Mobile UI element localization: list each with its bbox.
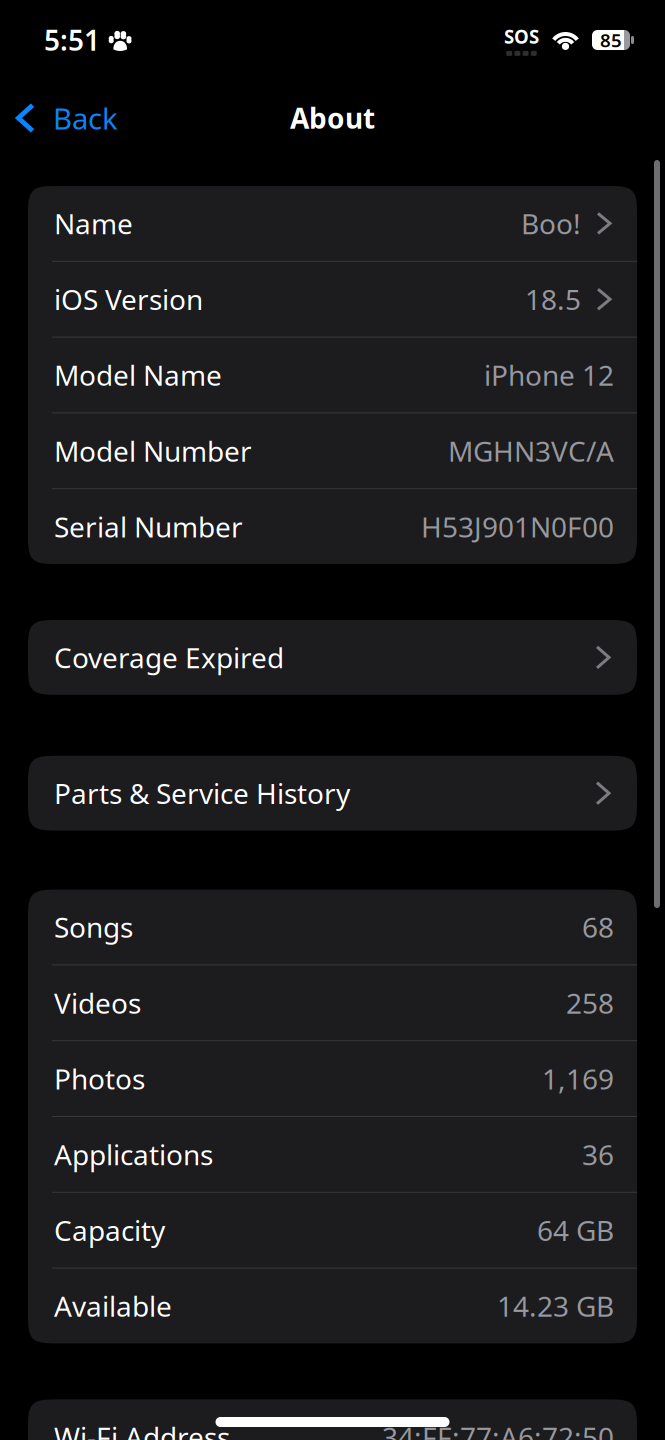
button[interactable]: Back <box>0 92 132 147</box>
button[interactable]: Model Name <box>28 338 637 412</box>
staticText: Photos <box>54 1060 145 1097</box>
staticText: MGHN3VC/A <box>448 432 614 469</box>
staticText: Coverage Expired <box>54 639 284 676</box>
staticText: Available <box>54 1287 172 1325</box>
staticText: Name <box>54 205 133 242</box>
staticText: 68 <box>582 908 614 946</box>
staticText: Model Number <box>54 432 252 469</box>
staticText: 18.5 <box>525 281 581 318</box>
staticText: About <box>290 99 375 137</box>
staticText: Wi-Fi Address <box>54 1418 230 1440</box>
button[interactable]: Applications <box>28 1117 637 1192</box>
staticText: 36 <box>582 1136 614 1173</box>
staticText: Applications <box>54 1136 213 1173</box>
staticText: Boo! <box>521 205 581 242</box>
button[interactable]: Videos <box>28 965 637 1040</box>
staticText: H53J901N0F00 <box>421 508 614 545</box>
staticText: 5:51 <box>44 21 100 59</box>
staticText: 34:FF:77:A6:72:50 <box>382 1418 614 1440</box>
button[interactable]: Songs <box>28 890 637 964</box>
button[interactable]: Wi-Fi Address <box>28 1399 637 1440</box>
staticText: 14.23 GB <box>497 1287 614 1325</box>
button[interactable]: iOS Version <box>28 262 637 337</box>
staticText: 64 GB <box>537 1212 614 1249</box>
staticText: Model Name <box>54 356 222 394</box>
staticText: Back <box>53 98 118 137</box>
button[interactable]: Serial Number <box>28 489 637 564</box>
staticText: iPhone 12 <box>484 356 614 394</box>
staticText: iOS Version <box>54 281 203 318</box>
staticText: 1,169 <box>542 1060 614 1097</box>
staticText: Songs <box>54 908 133 946</box>
button[interactable]: Photos <box>28 1041 637 1116</box>
staticText: 258 <box>566 984 614 1021</box>
staticText: Serial Number <box>54 508 243 545</box>
staticText: 85 <box>600 28 622 52</box>
button[interactable]: Available <box>28 1269 637 1343</box>
staticText: Videos <box>54 984 141 1021</box>
button[interactable]: Model Number <box>28 413 637 488</box>
staticText: Capacity <box>54 1212 165 1249</box>
staticText: SOS <box>504 24 539 49</box>
button[interactable]: Name <box>28 186 637 261</box>
button[interactable]: Coverage Expired <box>28 620 637 695</box>
staticText: Parts & Service History <box>54 775 350 812</box>
button[interactable]: Capacity <box>28 1193 637 1268</box>
button[interactable]: Parts & Service History <box>28 756 637 831</box>
